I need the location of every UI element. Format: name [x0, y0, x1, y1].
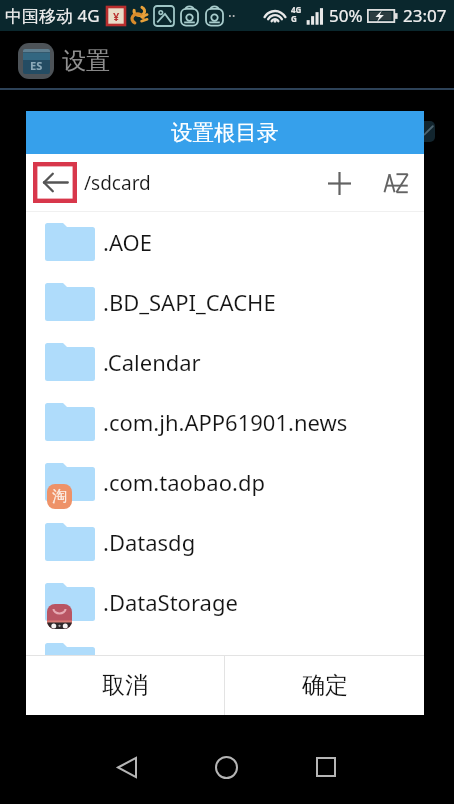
- button[interactable]: .AOE: [26, 212, 424, 272]
- staticText: 确定: [302, 671, 348, 700]
- staticText: .com.jh.APP61901.news: [103, 407, 348, 437]
- staticText: .AOE: [103, 227, 152, 257]
- button[interactable]: Sort: [373, 160, 419, 206]
- staticText: /sdcard: [84, 170, 151, 196]
- button[interactable]: .com.jh.APP61901.news: [26, 392, 424, 452]
- staticText: G: [291, 13, 297, 23]
- button[interactable]: Back: [99, 739, 155, 795]
- button[interactable]: .Calendar: [26, 332, 424, 392]
- button[interactable]: Back: [33, 162, 77, 203]
- staticText: 50%: [329, 4, 363, 27]
- staticText: .BD_SAPI_CACHE: [103, 287, 276, 317]
- staticText: .DataStorage: [103, 587, 238, 617]
- button[interactable]: Recent apps: [298, 739, 354, 795]
- staticText: 中国移动 4G: [5, 4, 100, 27]
- button[interactable]: 取消: [26, 656, 224, 715]
- staticText: 设置: [62, 46, 110, 76]
- staticText: ES: [30, 58, 43, 73]
- staticText: 4G: [291, 4, 302, 15]
- button[interactable]: 淘: [26, 452, 424, 512]
- button[interactable]: .BD_SAPI_CACHE: [26, 272, 424, 332]
- staticText: 23:07: [403, 4, 447, 27]
- button[interactable]: .DataStorage: [26, 572, 424, 632]
- staticText: 设置根目录: [171, 119, 279, 146]
- staticText: 淘: [52, 487, 67, 506]
- button[interactable]: 确定: [225, 656, 424, 715]
- button[interactable]: Add folder: [316, 160, 362, 206]
- button[interactable]: .Dmusic: [26, 632, 424, 655]
- staticText: .com.taobao.dp: [103, 467, 265, 497]
- staticText: 取消: [102, 671, 148, 700]
- staticText: ¥: [113, 9, 120, 24]
- staticText: .Calendar: [103, 347, 201, 377]
- button[interactable]: Home: [198, 739, 254, 795]
- staticText: .Datasdg: [103, 527, 196, 557]
- staticText: ··: [228, 6, 236, 25]
- button[interactable]: .Datasdg: [26, 512, 424, 572]
